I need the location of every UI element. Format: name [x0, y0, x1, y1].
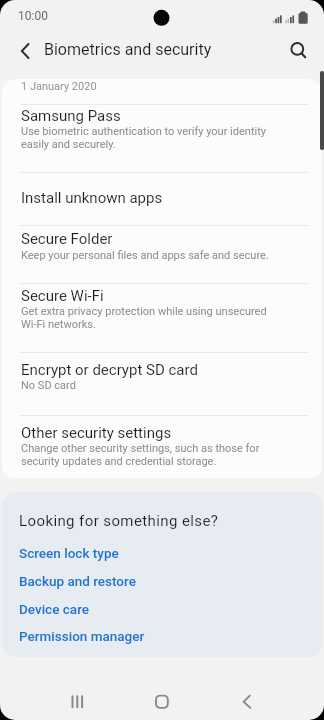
staticText: Screen lock type: [19, 545, 119, 561]
button[interactable]: Device care: [2, 596, 322, 623]
button[interactable]: Install unknown apps: [2, 172, 322, 225]
button[interactable]: [56, 680, 100, 720]
staticText: 1 January 2020: [21, 80, 97, 93]
button[interactable]: [140, 680, 184, 720]
button[interactable]: [281, 33, 314, 66]
button[interactable]: Permission manager: [2, 623, 322, 651]
staticText: Permission manager: [19, 628, 145, 644]
staticText: Use biometric authentication to verify y…: [21, 125, 266, 151]
staticText: Looking for something else?: [19, 512, 219, 530]
staticText: Secure Folder: [21, 230, 113, 248]
button[interactable]: Secure Folder: [2, 225, 322, 283]
staticText: Other security settings: [21, 424, 172, 442]
button[interactable]: [6, 34, 38, 66]
button[interactable]: Screen lock type: [2, 540, 322, 568]
staticText: Keep your personal files and apps safe a…: [21, 249, 269, 262]
staticText: Get extra privacy protection while using…: [21, 305, 267, 331]
staticText: Secure Wi-Fi: [21, 287, 104, 305]
staticText: Encrypt or decrypt SD card: [21, 361, 198, 379]
button[interactable]: Secure Wi-Fi: [2, 283, 322, 352]
button[interactable]: Encrypt or decrypt SD card: [2, 352, 322, 415]
button[interactable]: Samsung Pass: [2, 104, 322, 172]
button[interactable]: Other security settings: [2, 415, 322, 478]
staticText: 10:00: [18, 9, 48, 23]
staticText: Samsung Pass: [21, 107, 121, 125]
staticText: Backup and restore: [19, 573, 136, 589]
staticText: No SD card: [21, 379, 76, 392]
staticText: Install unknown apps: [21, 189, 163, 207]
staticText: Biometrics and security: [44, 40, 212, 59]
button[interactable]: Backup and restore: [2, 568, 322, 596]
staticText: Device care: [19, 601, 90, 617]
staticText: Change other security settings, such as …: [21, 442, 260, 468]
button[interactable]: [225, 680, 269, 720]
